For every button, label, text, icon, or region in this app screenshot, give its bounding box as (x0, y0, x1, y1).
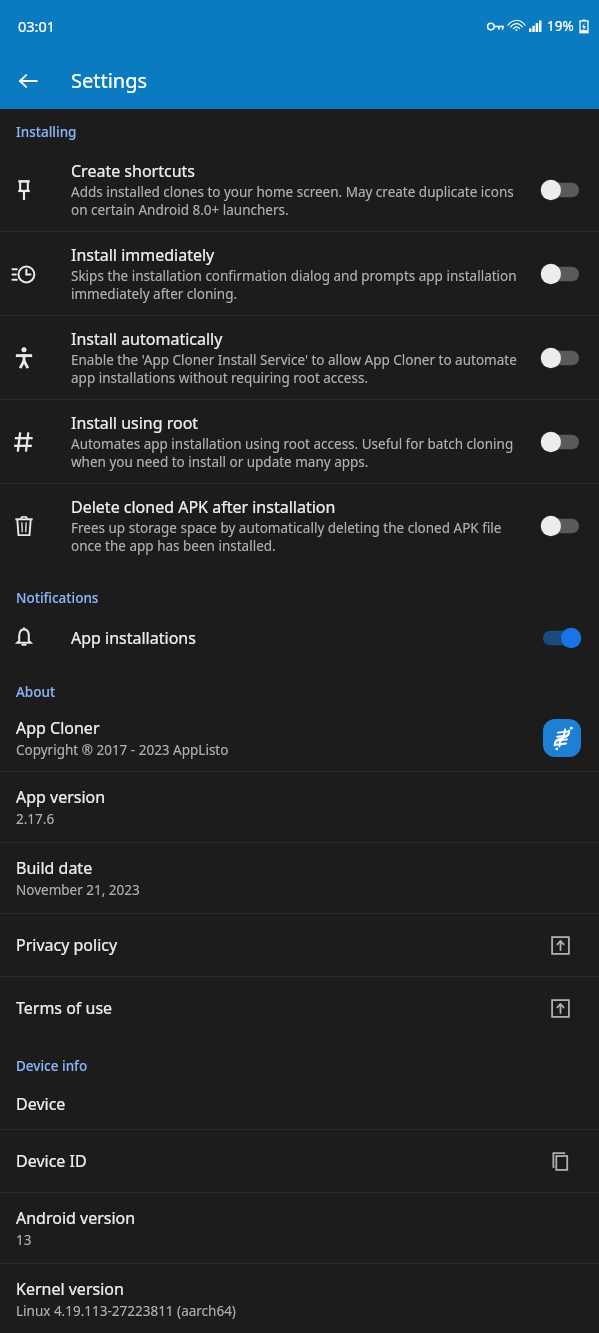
staticText: 13 (16, 1231, 32, 1249)
staticText: November 21, 2023 (16, 881, 140, 899)
button[interactable] (539, 429, 583, 455)
staticText: Device (16, 1093, 66, 1115)
button[interactable] (539, 345, 583, 371)
staticText: Kernel version (16, 1278, 124, 1300)
button[interactable] (539, 513, 583, 539)
button[interactable]: App installations (0, 613, 599, 663)
button[interactable]: Terms of use (543, 991, 577, 1025)
button[interactable]: Install immediately (0, 232, 599, 315)
staticText: Device ID (16, 1150, 87, 1172)
staticText: Settings (71, 67, 148, 94)
button[interactable]: Privacy policy (0, 914, 599, 976)
staticText: App installations (71, 627, 196, 649)
button[interactable]: App Cloner (0, 705, 599, 771)
button[interactable]: Terms of use (0, 977, 599, 1039)
button[interactable]: Kernel version (0, 1264, 599, 1333)
button[interactable]: Install automatically (0, 316, 599, 399)
staticText: Install using root (71, 412, 199, 434)
button[interactable] (539, 625, 583, 651)
staticText: Automates app installation using root ac… (71, 435, 529, 471)
staticText: App version (16, 786, 106, 808)
staticText: Android version (16, 1207, 136, 1229)
button[interactable]: Device ID (0, 1130, 599, 1192)
staticText: Copyright ® 2017 - 2023 AppListo (16, 741, 229, 759)
button[interactable]: Android version (0, 1193, 599, 1263)
button[interactable]: Create shortcuts (0, 148, 599, 231)
staticText: Frees up storage space by automatically … (71, 519, 529, 555)
staticText: 2.17.6 (16, 810, 55, 828)
button[interactable]: Back (8, 61, 48, 101)
staticText: App Cloner (16, 717, 100, 739)
staticText: Adds installed clones to your home scree… (71, 183, 529, 219)
button[interactable] (539, 177, 583, 203)
staticText: Notifications (16, 589, 99, 607)
staticText: Create shortcuts (71, 160, 195, 182)
button[interactable]: Device (0, 1079, 599, 1129)
staticText: Skips the installation confirmation dial… (71, 267, 529, 303)
staticText: Terms of use (16, 997, 113, 1019)
staticText: Privacy policy (16, 934, 118, 956)
staticText: Install automatically (71, 328, 223, 350)
staticText: Installing (16, 123, 77, 141)
staticText: Delete cloned APK after installation (71, 496, 336, 518)
staticText: 03:01 (18, 16, 56, 36)
staticText: Linux 4.19.113-27223811 (aarch64) (16, 1302, 236, 1319)
button[interactable]: Build date (0, 843, 599, 913)
staticText: Enable the 'App Cloner Install Service' … (71, 351, 529, 387)
button[interactable]: App version (0, 772, 599, 842)
button[interactable]: Privacy policy (543, 928, 577, 962)
staticText: About (16, 683, 56, 701)
staticText: Install immediately (71, 244, 215, 266)
button[interactable]: Install using root (0, 400, 599, 483)
button[interactable]: Delete cloned APK after installation (0, 484, 599, 567)
button[interactable]: Device ID (543, 1144, 577, 1178)
staticText: 19% (547, 17, 574, 35)
button[interactable] (539, 261, 583, 287)
staticText: Device info (16, 1057, 88, 1075)
staticText: Build date (16, 857, 93, 879)
